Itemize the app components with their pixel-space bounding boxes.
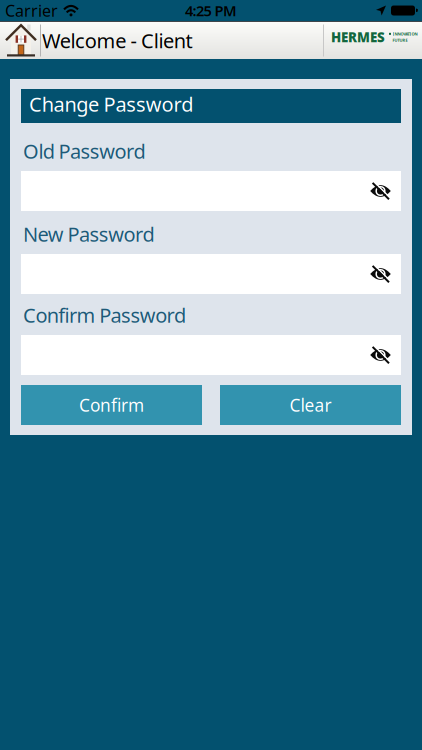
staticText: 4:25 PM [185,1,237,20]
staticText: New Password [23,221,154,247]
button[interactable]: Hermes [324,22,422,59]
staticText: Change Password [29,91,193,117]
button[interactable]: Show password [370,346,391,363]
staticText: Welcome - Client [42,27,192,54]
button[interactable]: Home [0,24,40,57]
button[interactable]: Clear [220,385,401,425]
staticText: Carrier [5,0,58,21]
staticText: INNOVATION [392,31,417,36]
staticText: Confirm Password [23,302,186,328]
staticText: HERMES [331,28,385,46]
button[interactable]: Show password [370,182,391,199]
staticText: FUTURE [392,37,407,43]
staticText: Confirm [79,393,144,416]
staticText: Old Password [23,138,145,164]
button[interactable]: Confirm [21,385,202,425]
button[interactable]: Show password [370,265,391,282]
staticText: Clear [289,393,331,416]
